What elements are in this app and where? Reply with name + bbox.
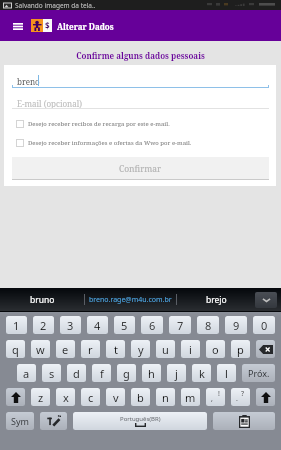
- staticText: !: [218, 389, 220, 399]
- button[interactable]: 9: [225, 316, 247, 334]
- staticText: m: [185, 390, 196, 405]
- staticText: 2: [40, 318, 47, 333]
- button[interactable]: p: [231, 340, 250, 358]
- button[interactable]: ?: [231, 388, 250, 406]
- staticText: Salvando imagem da tela..: [15, 1, 96, 10]
- button[interactable]: Sym: [6, 412, 34, 430]
- staticText: f: [100, 366, 104, 381]
- staticText: q: [12, 342, 19, 357]
- staticText: Português(BR): [120, 415, 161, 423]
- button[interactable]: 4: [87, 316, 108, 334]
- button[interactable]: Desejo receber informações e ofertas da …: [16, 138, 192, 148]
- button[interactable]: u: [156, 340, 175, 358]
- button[interactable]: Mais sugestões: [255, 292, 277, 308]
- button[interactable]: 7: [169, 316, 191, 334]
- button[interactable]: 2: [33, 316, 54, 334]
- button[interactable]: Shift: [6, 388, 25, 406]
- staticText: u: [162, 342, 169, 357]
- staticText: 8: [205, 318, 212, 333]
- button[interactable]: m: [181, 388, 200, 406]
- staticText: Desejo receber informações e ofertas da …: [28, 139, 192, 147]
- button[interactable]: Próx.: [242, 364, 275, 382]
- button[interactable]: Confirmar: [12, 157, 269, 180]
- staticText: i: [189, 342, 192, 357]
- staticText: $: [45, 20, 50, 31]
- staticText: n: [162, 390, 169, 405]
- staticText: Confirmar: [119, 163, 162, 175]
- staticText: o: [212, 342, 219, 357]
- staticText: w: [36, 342, 45, 357]
- button[interactable]: f: [92, 364, 111, 382]
- button[interactable]: i: [181, 340, 200, 358]
- staticText: d: [73, 366, 80, 381]
- staticText: g: [123, 366, 130, 381]
- staticText: Próx.: [248, 367, 270, 379]
- staticText: Confirme alguns dados pessoais: [0, 50, 281, 61]
- button[interactable]: 1: [6, 316, 27, 334]
- staticText: y: [138, 342, 144, 357]
- button[interactable]: 3: [60, 316, 81, 334]
- button[interactable]: n: [156, 388, 175, 406]
- button[interactable]: q: [6, 340, 25, 358]
- button[interactable]: g: [117, 364, 136, 382]
- button[interactable]: b: [131, 388, 150, 406]
- button[interactable]: 8: [197, 316, 219, 334]
- button[interactable]: breno.rage@m4u.com.br: [85, 288, 176, 311]
- staticText: 0: [261, 318, 268, 333]
- button[interactable]: brejo: [177, 288, 255, 311]
- staticText: x: [63, 390, 69, 405]
- button[interactable]: x: [56, 388, 75, 406]
- staticText: s: [49, 366, 55, 381]
- button[interactable]: h: [142, 364, 161, 382]
- button[interactable]: k: [192, 364, 211, 382]
- staticText: 3: [67, 318, 74, 333]
- button[interactable]: s: [42, 364, 61, 382]
- staticText: c: [88, 390, 94, 405]
- button[interactable]: !: [206, 388, 225, 406]
- button[interactable]: l: [217, 364, 236, 382]
- button[interactable]: Desejo receber recibos de recarga por es…: [16, 119, 170, 129]
- staticText: e: [62, 342, 69, 357]
- button[interactable]: bruno: [0, 288, 84, 311]
- button[interactable]: a: [17, 364, 36, 382]
- button[interactable]: r: [81, 340, 100, 358]
- staticText: 6: [149, 318, 156, 333]
- staticText: r: [88, 342, 93, 357]
- button[interactable]: 6: [141, 316, 163, 334]
- staticText: v: [113, 390, 119, 405]
- staticText: l: [225, 366, 228, 381]
- button[interactable]: Área de transferência: [213, 412, 275, 430]
- staticText: b: [137, 390, 144, 405]
- staticText: 5: [121, 318, 128, 333]
- staticText: t: [114, 342, 118, 357]
- button[interactable]: Backspace: [256, 340, 275, 358]
- staticText: Desejo receber recibos de recarga por es…: [28, 120, 170, 128]
- button[interactable]: e: [56, 340, 75, 358]
- button[interactable]: d: [67, 364, 86, 382]
- staticText: 9: [233, 318, 240, 333]
- staticText: breno.rage@m4u.com.br: [89, 295, 172, 305]
- staticText: 1: [13, 318, 20, 333]
- staticText: bruno: [30, 294, 55, 306]
- staticText: k: [199, 366, 205, 381]
- button[interactable]: Entrada manuscrita: [40, 412, 67, 430]
- staticText: brejo: [206, 294, 227, 306]
- button[interactable]: Português(BR): [73, 412, 207, 430]
- staticText: Sym: [11, 415, 29, 427]
- button[interactable]: 0: [253, 316, 275, 334]
- button[interactable]: 5: [114, 316, 135, 334]
- button[interactable]: Shift: [256, 388, 275, 406]
- button[interactable]: j: [167, 364, 186, 382]
- staticText: ?: [241, 389, 245, 399]
- button[interactable]: y: [131, 340, 150, 358]
- staticText: 7: [177, 318, 184, 333]
- button[interactable]: o: [206, 340, 225, 358]
- button[interactable]: t: [106, 340, 125, 358]
- button[interactable]: z: [31, 388, 50, 406]
- button[interactable]: w: [31, 340, 50, 358]
- staticText: breno: [17, 76, 40, 87]
- button[interactable]: Menu: [9, 19, 26, 33]
- button[interactable]: c: [81, 388, 100, 406]
- button[interactable]: v: [106, 388, 125, 406]
- staticText: a: [23, 366, 30, 381]
